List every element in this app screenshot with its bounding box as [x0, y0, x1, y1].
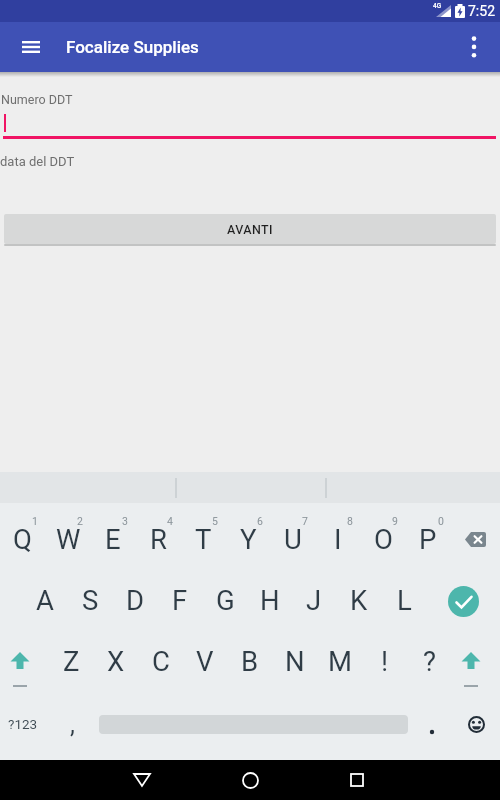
staticText: U	[284, 523, 302, 555]
button[interactable]	[453, 521, 497, 557]
staticText: 7	[302, 515, 308, 527]
button[interactable]: ,	[50, 703, 94, 745]
staticText: A	[36, 584, 54, 616]
staticText: X	[107, 645, 125, 677]
button[interactable]: I	[316, 518, 360, 560]
staticText: 5	[212, 515, 218, 527]
staticText: ?	[423, 645, 436, 677]
button[interactable]: T	[181, 518, 225, 560]
staticText: T	[195, 523, 212, 555]
staticText: V	[196, 645, 214, 677]
button[interactable]: H	[248, 579, 292, 621]
staticText: G	[216, 584, 235, 616]
staticText: 3	[122, 515, 128, 527]
button[interactable]: Y	[226, 518, 270, 560]
button[interactable]	[0, 640, 42, 682]
staticText: ,	[70, 710, 75, 739]
button[interactable]: !	[363, 640, 407, 682]
staticText: P	[419, 523, 437, 555]
button[interactable]: ?123	[8, 716, 38, 732]
button[interactable]: K	[337, 579, 381, 621]
button[interactable]: N	[273, 640, 317, 682]
button[interactable]	[13, 29, 49, 65]
button[interactable]: R	[136, 518, 180, 560]
button[interactable]: U	[271, 518, 315, 560]
staticText: D	[126, 584, 145, 616]
staticText: !	[381, 645, 389, 677]
button[interactable]: C	[139, 640, 183, 682]
staticText: 2	[77, 515, 83, 527]
button[interactable]: M	[318, 640, 362, 682]
button[interactable]: W	[46, 518, 90, 560]
staticText: 1	[32, 515, 38, 527]
staticText: 4G	[433, 2, 442, 10]
staticText: R	[150, 523, 167, 555]
button[interactable]	[220, 760, 280, 800]
staticText: B	[241, 645, 259, 677]
button[interactable]: G	[203, 579, 247, 621]
staticText: 9	[392, 515, 398, 527]
button[interactable]: V	[183, 640, 227, 682]
staticText: L	[397, 584, 412, 616]
staticText: 7:52	[468, 3, 495, 19]
button[interactable]: X	[94, 640, 138, 682]
staticText: N	[285, 645, 305, 677]
staticText: E	[105, 523, 121, 555]
staticText: data del DDT	[0, 154, 75, 169]
button[interactable]	[448, 586, 479, 617]
staticText: Y	[240, 523, 257, 555]
button[interactable]: O	[361, 518, 405, 560]
staticText: Q	[13, 523, 32, 555]
button[interactable]: L	[382, 579, 426, 621]
button[interactable]: J	[292, 579, 336, 621]
button[interactable]: F	[158, 579, 202, 621]
staticText: M	[328, 645, 353, 677]
button[interactable]	[112, 760, 172, 800]
staticText: F	[172, 584, 188, 616]
staticText: J	[306, 584, 322, 616]
staticText: Numero DDT	[1, 92, 73, 107]
button[interactable]	[410, 715, 454, 742]
button[interactable]	[455, 710, 499, 740]
staticText: K	[350, 584, 368, 616]
staticText: 6	[257, 515, 263, 527]
staticText: 4	[167, 515, 173, 527]
staticText: S	[82, 584, 99, 616]
staticText: Focalize Supplies	[66, 37, 199, 57]
staticText: W	[56, 523, 81, 555]
staticText: C	[152, 645, 170, 677]
button[interactable]: E	[91, 518, 135, 560]
button[interactable]: AVANTI	[4, 214, 496, 244]
button[interactable]	[449, 640, 493, 682]
button[interactable]	[327, 760, 387, 800]
staticText: AVANTI	[227, 222, 274, 237]
button[interactable]: Z	[49, 640, 93, 682]
button[interactable]: ?	[407, 640, 451, 682]
staticText: Z	[63, 645, 80, 677]
staticText: 0	[438, 515, 444, 527]
button[interactable]: B	[228, 640, 272, 682]
button[interactable]: A	[23, 579, 67, 621]
button[interactable]: D	[113, 579, 157, 621]
staticText: H	[260, 584, 280, 616]
staticText: 8	[347, 515, 353, 527]
button[interactable]: P	[406, 518, 450, 560]
staticText: I	[334, 523, 342, 555]
button[interactable]	[456, 29, 492, 65]
button[interactable]: S	[68, 579, 112, 621]
staticText: O	[374, 523, 393, 555]
button[interactable]: Q	[0, 518, 44, 560]
